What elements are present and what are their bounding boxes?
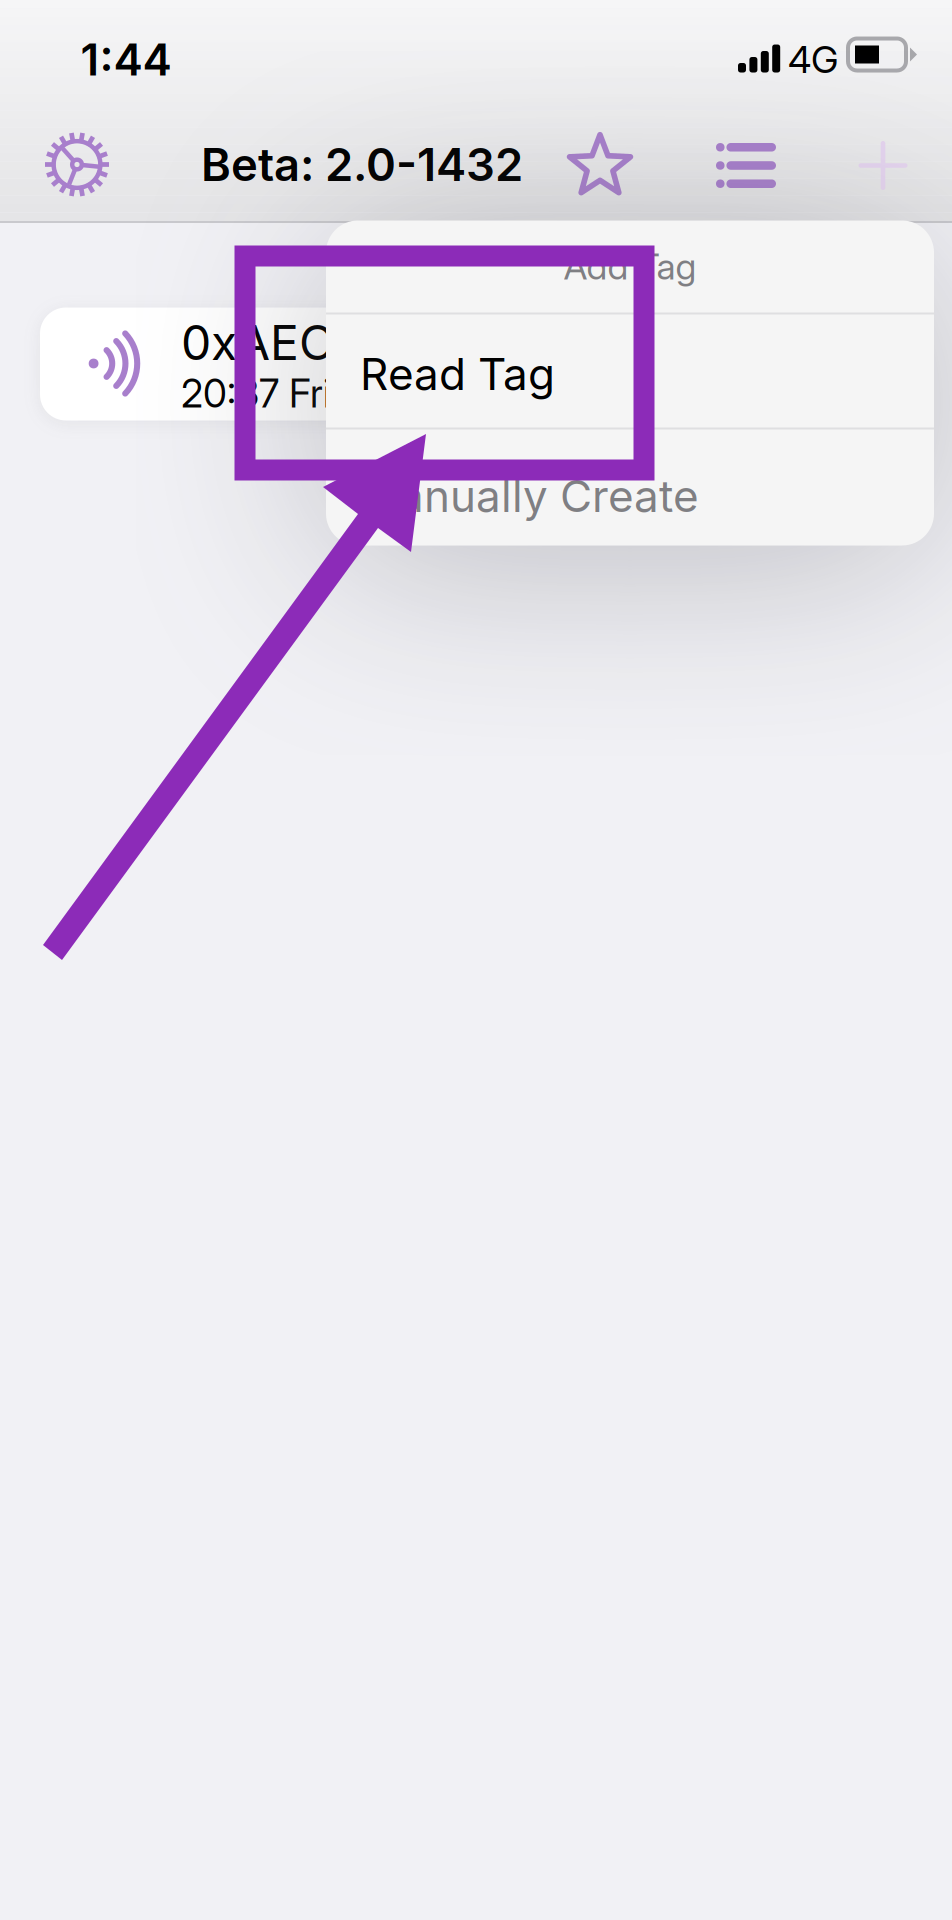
- button[interactable]: 0xAEC7D3B2: [40, 307, 908, 420]
- button[interactable]: Favorites: [548, 112, 652, 216]
- button[interactable]: Add: [831, 113, 935, 217]
- staticText: 20:37 Fri 14 Jun: [181, 370, 452, 417]
- button[interactable]: Saved list: [694, 113, 798, 217]
- button[interactable]: Settings: [21, 112, 133, 216]
- staticText: Manually Create: [359, 469, 699, 523]
- button[interactable]: Add Tag: [326, 220, 934, 313]
- staticText: Beta: 2.0-1432: [201, 137, 523, 192]
- staticText: 0xAEC7D3B2: [181, 313, 486, 372]
- button[interactable]: Manually Create: [326, 428, 934, 545]
- staticText: 4G: [788, 37, 838, 82]
- staticText: Read Tag: [360, 347, 555, 401]
- staticText: Add Tag: [563, 245, 696, 288]
- staticText: 1:44: [80, 33, 171, 86]
- button[interactable]: Read Tag: [326, 314, 934, 429]
